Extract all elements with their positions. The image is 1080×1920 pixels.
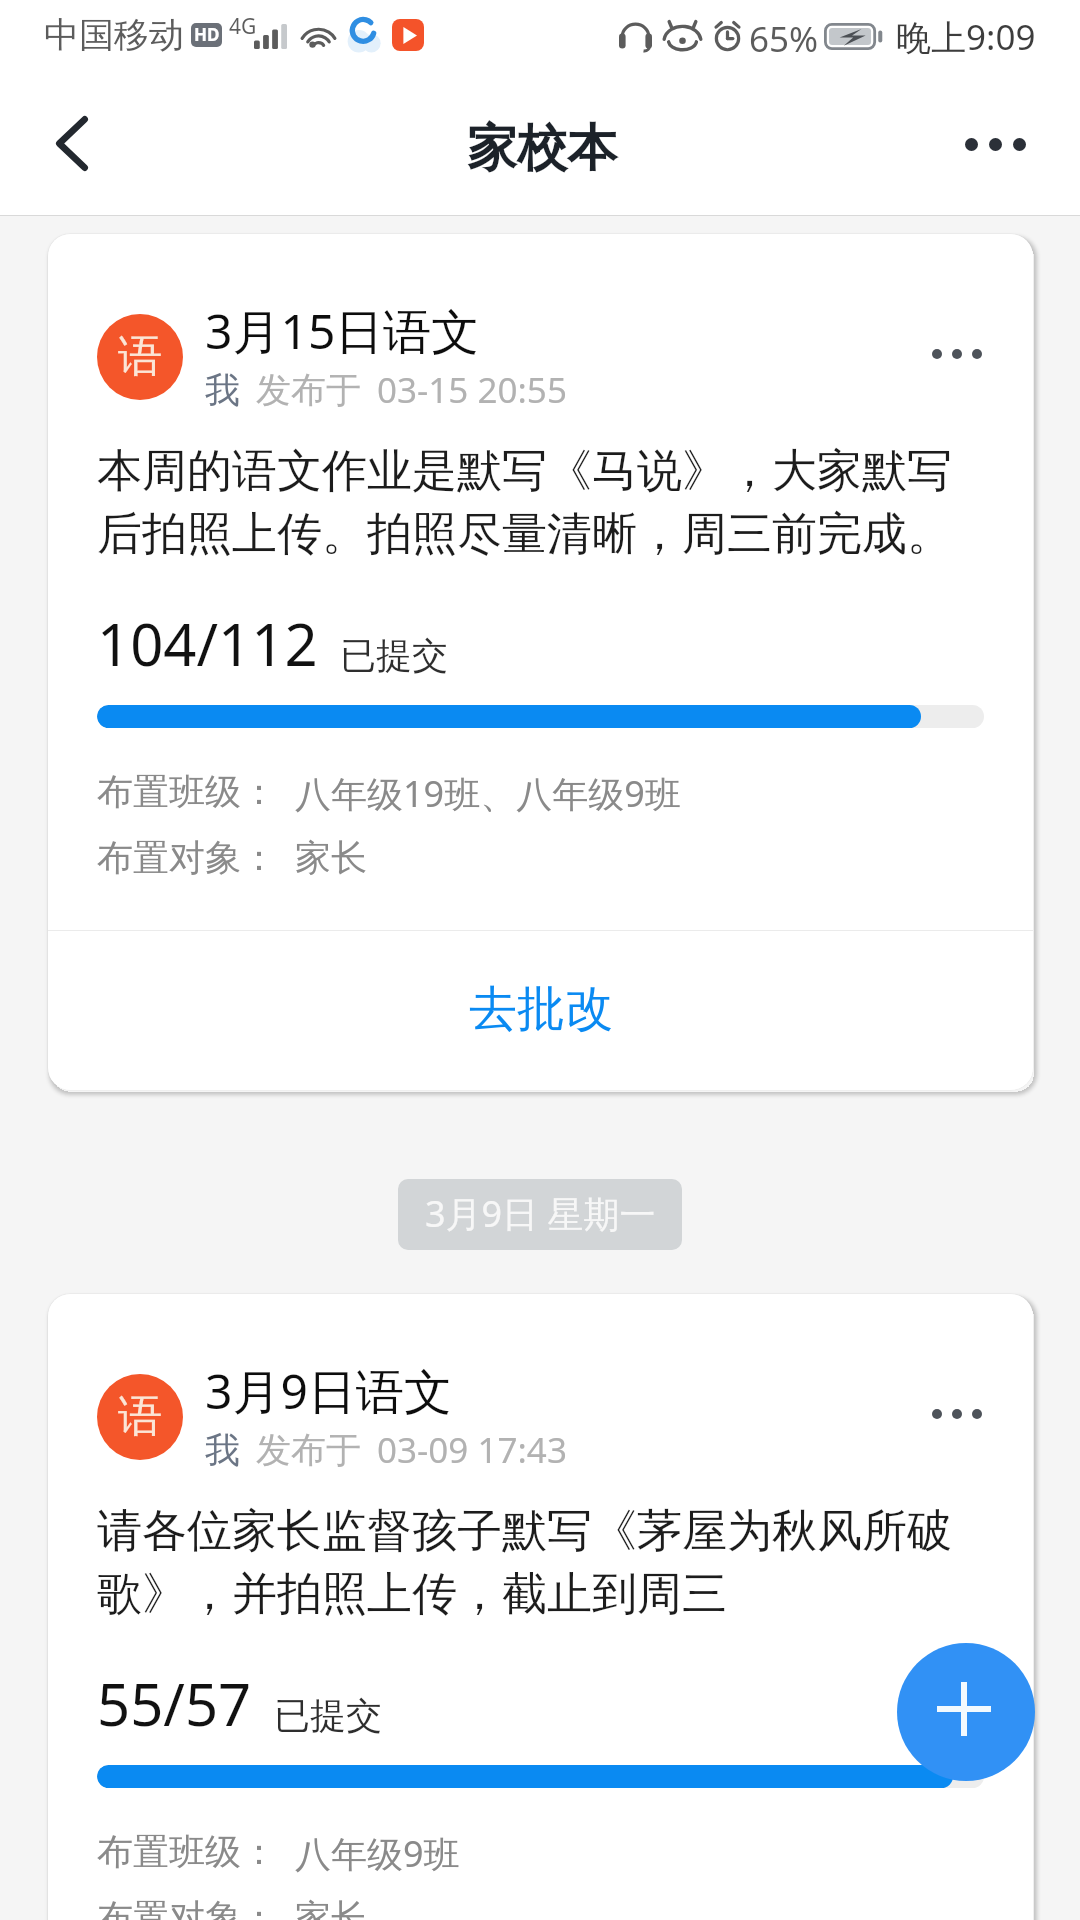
- button[interactable]: Back: [0, 88, 130, 216]
- staticText: 布置对象：: [97, 835, 277, 880]
- button[interactable]: More options: [935, 88, 1055, 216]
- staticText: 55/57: [97, 1664, 252, 1743]
- staticText: 104/112: [97, 604, 318, 683]
- staticText: 我: [205, 1428, 240, 1472]
- staticText: HD: [194, 23, 220, 46]
- staticText: 晚上9:09: [896, 13, 1036, 61]
- staticText: 03-15 20:55: [377, 366, 567, 414]
- button[interactable]: Add homework: [897, 1643, 1035, 1781]
- staticText: 语: [118, 329, 162, 384]
- staticText: 已提交: [340, 633, 448, 678]
- button[interactable]: More: [901, 1364, 1012, 1464]
- staticText: 家长: [295, 835, 367, 880]
- button[interactable]: More: [901, 304, 1012, 404]
- staticText: 布置班级：: [97, 1829, 277, 1874]
- staticText: 3月9日语文: [205, 1358, 452, 1424]
- staticText: 已提交: [274, 1693, 382, 1738]
- staticText: 3月15日语文: [205, 298, 480, 364]
- staticText: 八年级9班: [295, 1829, 460, 1878]
- staticText: 中国移动: [44, 13, 184, 57]
- staticText: 家长: [295, 1895, 367, 1920]
- button[interactable]: 语: [48, 1294, 1033, 1920]
- staticText: 3月9日 星期一: [425, 1189, 656, 1238]
- staticText: 布置班级：: [97, 769, 277, 814]
- staticText: 发布于: [256, 368, 361, 412]
- staticText: 布置对象：: [97, 1895, 277, 1920]
- staticText: 03-09 17:43: [377, 1426, 567, 1474]
- staticText: 请各位家长监督孩子默写《茅屋为秋风所破歌》，并拍照上传，截止到周三: [97, 1503, 987, 1622]
- staticText: 八年级19班、八年级9班: [295, 769, 681, 818]
- button[interactable]: 去批改: [48, 931, 1033, 1090]
- staticText: 语: [118, 1389, 162, 1444]
- staticText: 本周的语文作业是默写《马说》，大家默写后拍照上传。拍照尽量清晰，周三前完成。: [97, 443, 987, 562]
- staticText: 65%: [749, 15, 819, 63]
- button[interactable]: 语: [48, 234, 1033, 1090]
- staticText: 我: [205, 368, 240, 412]
- staticText: 发布于: [256, 1428, 361, 1472]
- staticText: 去批改: [469, 979, 613, 1039]
- staticText: 4G: [229, 12, 257, 41]
- staticText: 家校本: [467, 117, 617, 180]
